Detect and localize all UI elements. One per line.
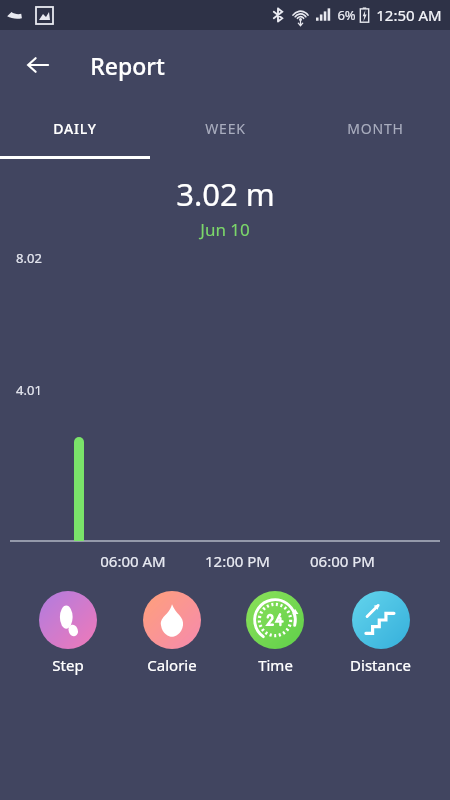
staticText: Jun 10 (200, 218, 250, 241)
staticText: Step (52, 655, 84, 675)
button[interactable]: MONTH (300, 100, 450, 156)
button[interactable]: Calorie (137, 589, 207, 677)
staticText: Time (258, 655, 293, 675)
button[interactable]: WEEK (150, 100, 300, 156)
staticText: 12:50 AM (376, 5, 442, 25)
button[interactable]: Time (240, 589, 310, 677)
staticText: 06:00 PM (310, 551, 375, 571)
button[interactable]: DAILY (0, 100, 150, 156)
staticText: 6% (337, 6, 356, 24)
staticText: 06:00 AM (100, 551, 166, 571)
staticText: 4.01 (16, 381, 42, 399)
staticText: WEEK (205, 119, 246, 138)
staticText: Distance (350, 655, 411, 675)
button[interactable]: Distance (344, 589, 417, 677)
staticText: Calorie (147, 655, 197, 675)
staticText: DAILY (53, 119, 97, 138)
staticText: 8.02 (16, 249, 42, 267)
staticText: MONTH (347, 119, 404, 138)
button[interactable]: Step (33, 589, 103, 677)
staticText: 12:00 PM (205, 551, 270, 571)
button[interactable]: Back (16, 43, 60, 87)
staticText: Report (90, 50, 165, 81)
staticText: 3.02 m (176, 173, 275, 215)
